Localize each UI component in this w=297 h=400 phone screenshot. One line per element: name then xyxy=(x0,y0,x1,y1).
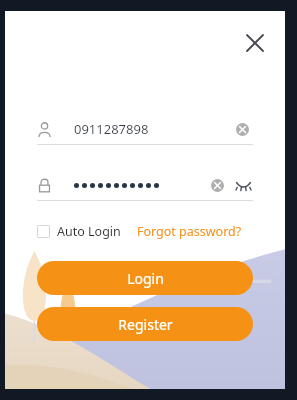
staticText: Register xyxy=(118,315,173,334)
button[interactable]: Clear phone number xyxy=(231,118,253,140)
button[interactable]: Auto Login xyxy=(37,223,121,240)
button[interactable]: Forgot password? xyxy=(137,223,242,240)
staticText: Auto Login xyxy=(57,223,121,240)
button[interactable]: Register xyxy=(37,307,253,341)
button[interactable]: Login xyxy=(37,261,253,295)
staticText: Forgot password? xyxy=(137,223,242,240)
staticText: Login xyxy=(127,269,164,288)
staticText: 0911287898 xyxy=(74,120,149,138)
button[interactable]: Clear password xyxy=(207,175,227,195)
button[interactable]: Close xyxy=(235,23,275,63)
button[interactable]: Show password xyxy=(233,175,253,195)
button[interactable]: 0911287898 xyxy=(37,114,253,144)
button[interactable]: Clear password xyxy=(37,170,253,200)
